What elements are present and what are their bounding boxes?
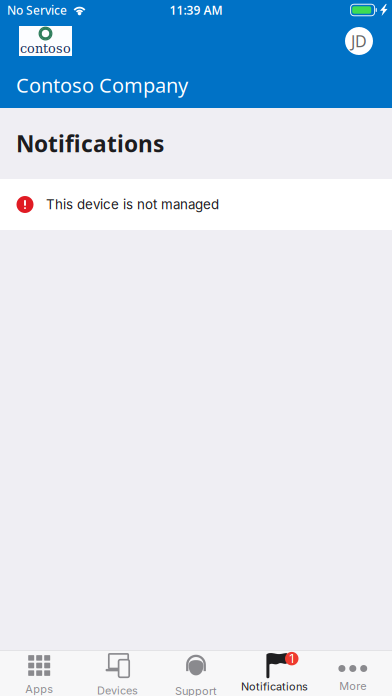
staticText: contoso: [20, 41, 71, 56]
staticText: 11:39 AM: [169, 2, 222, 18]
staticText: Notifications: [16, 128, 164, 158]
button[interactable]: Apps: [0, 650, 78, 696]
button[interactable]: More: [314, 650, 392, 696]
staticText: Contoso Company: [16, 72, 188, 98]
button[interactable]: This device is not managed: [0, 179, 392, 230]
button[interactable]: Account: [345, 27, 373, 55]
staticText: Apps: [25, 682, 53, 696]
staticText: Notifications: [241, 680, 308, 693]
button[interactable]: Support: [157, 650, 235, 696]
staticText: Devices: [97, 684, 138, 696]
staticText: No Service: [7, 2, 67, 18]
staticText: 1: [289, 651, 294, 666]
button[interactable]: 1: [235, 650, 314, 696]
staticText: This device is not managed: [46, 196, 219, 212]
staticText: Support: [175, 684, 217, 696]
staticText: More: [339, 679, 366, 693]
button[interactable]: Devices: [78, 650, 157, 696]
staticText: JD: [351, 30, 367, 52]
